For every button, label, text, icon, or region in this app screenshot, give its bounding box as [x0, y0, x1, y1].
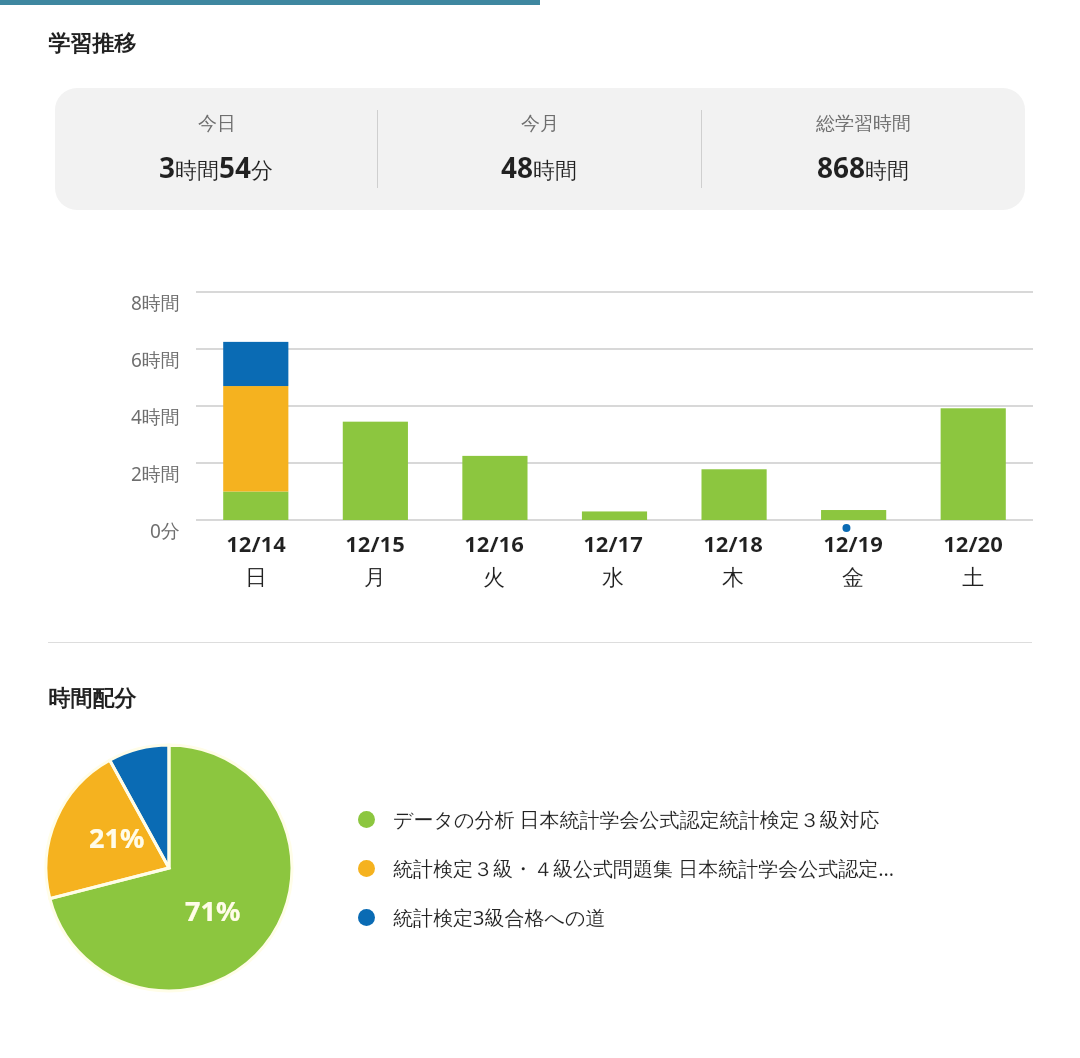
button[interactable]: 今月 — [501, 108, 578, 190]
staticText: 月 — [364, 564, 386, 592]
button[interactable]: 総学習時間 — [816, 108, 911, 190]
button[interactable]: データの分析 日本統計学会公式認定統計検定３級対応 — [358, 800, 1040, 839]
staticText: 今日 — [198, 112, 236, 136]
staticText: 3時間54分 — [159, 148, 274, 186]
staticText: データの分析 日本統計学会公式認定統計検定３級対応 — [393, 806, 880, 833]
button[interactable]: 12/17 — [553, 528, 673, 592]
staticText: 2時間 — [131, 461, 180, 487]
staticText: 4時間 — [131, 404, 180, 430]
button[interactable]: 12/18 — [673, 528, 793, 592]
button[interactable]: 今日 — [159, 108, 274, 190]
staticText: 水 — [602, 564, 624, 592]
staticText: 金 — [842, 564, 864, 592]
staticText: 学習推移 — [48, 30, 136, 58]
staticText: 12/18 — [703, 528, 763, 558]
staticText: 火 — [483, 564, 505, 592]
button[interactable]: 12/20 — [913, 528, 1033, 592]
staticText: 土 — [962, 564, 984, 592]
button[interactable]: 12/14 — [196, 528, 315, 592]
staticText: 日 — [245, 564, 267, 592]
button[interactable]: 12/15 — [315, 528, 434, 592]
staticText: 時間配分 — [48, 685, 136, 713]
staticText: 12/20 — [943, 528, 1003, 558]
staticText: 統計検定３級・４級公式問題集 日本統計学会公式認定… — [393, 855, 895, 882]
button[interactable]: 時間配分の円グラフ — [46, 745, 292, 991]
staticText: 0分 — [150, 518, 180, 544]
staticText: 木 — [722, 564, 744, 592]
staticText: 12/15 — [345, 528, 405, 558]
staticText: 統計検定3級合格への道 — [393, 904, 606, 931]
button[interactable]: 12/19 — [793, 528, 913, 592]
staticText: 12/17 — [583, 528, 643, 558]
staticText: 21% — [89, 819, 145, 856]
staticText: 6時間 — [131, 347, 180, 373]
staticText: 71% — [185, 892, 241, 929]
staticText: 12/19 — [823, 528, 883, 558]
button[interactable]: 統計検定３級・４級公式問題集 日本統計学会公式認定… — [358, 849, 1040, 888]
button[interactable]: 12/16 — [434, 528, 553, 592]
staticText: 総学習時間 — [816, 112, 911, 136]
staticText: 今月 — [521, 112, 559, 136]
staticText: 8時間 — [131, 290, 180, 316]
button[interactable]: 統計検定3級合格への道 — [358, 898, 1040, 937]
staticText: 48時間 — [501, 148, 578, 186]
staticText: 868時間 — [817, 148, 910, 186]
staticText: 12/14 — [226, 528, 286, 558]
staticText: 12/16 — [464, 528, 524, 558]
